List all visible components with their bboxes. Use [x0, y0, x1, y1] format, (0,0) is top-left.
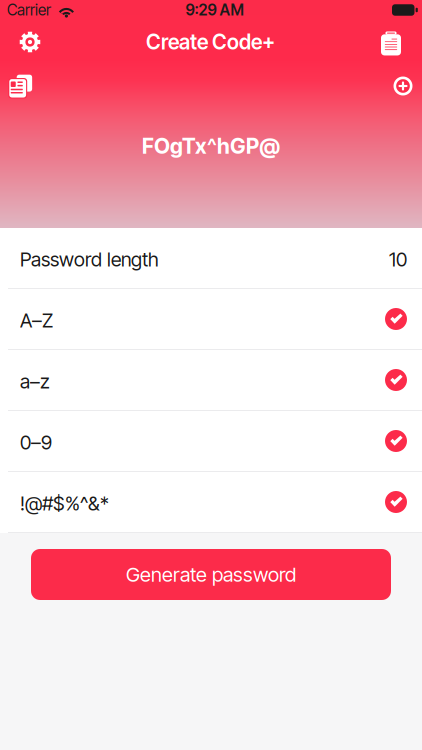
staticText: 9:29 AM — [185, 1, 243, 19]
staticText: Password length — [20, 248, 159, 271]
button[interactable]: Password length — [0, 228, 422, 288]
staticText: A–Z — [20, 309, 53, 332]
button[interactable]: a–z — [0, 350, 422, 410]
button[interactable]: History — [4, 73, 36, 99]
button[interactable]: Generate password — [31, 549, 391, 600]
button[interactable]: !@#$%^&* — [0, 472, 422, 532]
button[interactable]: Settings — [10, 25, 50, 59]
button[interactable]: A–Z — [0, 289, 422, 349]
button[interactable]: Copy to clipboard — [371, 25, 411, 59]
staticText: 0–9 — [20, 431, 52, 454]
staticText: a–z — [20, 370, 50, 393]
staticText: Generate password — [126, 562, 296, 587]
staticText: Create Code+ — [146, 29, 275, 54]
button[interactable]: Add — [387, 73, 419, 99]
staticText: FOgTx^hGP@ — [142, 133, 280, 159]
staticText: 10 — [389, 248, 407, 271]
staticText: !@#$%^&* — [20, 492, 109, 515]
staticText: Carrier — [7, 1, 51, 19]
button[interactable]: 0–9 — [0, 411, 422, 471]
